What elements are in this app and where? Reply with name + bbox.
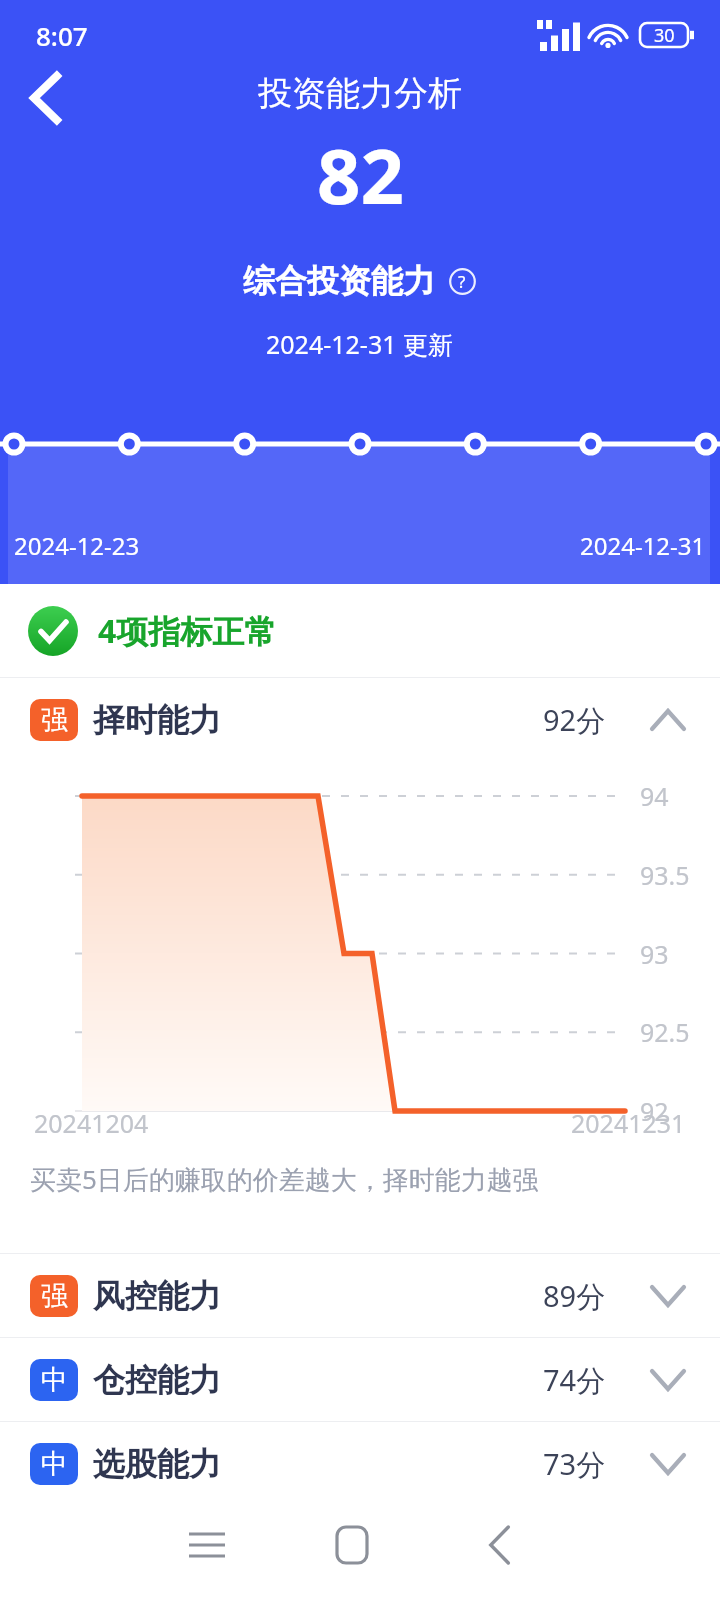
- button[interactable]: 强: [0, 678, 720, 761]
- staticText: 8:07: [36, 18, 88, 53]
- staticText: 投资能力分析: [258, 72, 462, 115]
- button[interactable]: Help: [447, 266, 477, 296]
- staticText: 20241231: [571, 1106, 686, 1140]
- button[interactable]: 中: [0, 1338, 720, 1421]
- staticText: 93.5: [640, 858, 690, 892]
- button[interactable]: Home: [305, 1498, 399, 1592]
- staticText: 93: [640, 937, 669, 971]
- button[interactable]: 强: [0, 1254, 720, 1337]
- staticText: 92分: [543, 700, 606, 740]
- staticText: 强: [41, 703, 68, 737]
- staticText: 综合投资能力: [243, 261, 435, 301]
- staticText: 2024-12-31 更新: [266, 327, 454, 361]
- button[interactable]: 4项指标正常: [0, 584, 720, 677]
- button[interactable]: 中: [0, 1422, 720, 1505]
- staticText: 仓控能力: [93, 1360, 221, 1400]
- staticText: 73分: [543, 1444, 606, 1484]
- staticText: 选股能力: [93, 1444, 221, 1484]
- staticText: 4项指标正常: [98, 609, 277, 653]
- staticText: 89分: [543, 1276, 606, 1316]
- button[interactable]: Back: [453, 1498, 547, 1592]
- staticText: 94: [640, 779, 669, 813]
- staticText: 2024-12-31: [580, 529, 706, 562]
- staticText: 2024-12-23: [14, 529, 140, 562]
- staticText: 92.5: [640, 1015, 690, 1049]
- staticText: 风控能力: [93, 1276, 221, 1316]
- staticText: ?: [458, 270, 466, 293]
- staticText: 92: [640, 1094, 669, 1128]
- staticText: 82: [317, 123, 404, 227]
- staticText: 74分: [543, 1360, 606, 1400]
- staticText: 20241204: [34, 1106, 149, 1140]
- staticText: 中: [41, 1363, 68, 1397]
- staticText: 30: [654, 23, 675, 48]
- staticText: 择时能力: [93, 700, 221, 740]
- button[interactable]: Back: [12, 64, 80, 132]
- staticText: 中: [41, 1447, 68, 1481]
- staticText: 强: [41, 1279, 68, 1313]
- staticText: 买卖5日后的赚取的价差越大，择时能力越强: [30, 1161, 539, 1197]
- button[interactable]: Recent apps: [160, 1498, 254, 1592]
